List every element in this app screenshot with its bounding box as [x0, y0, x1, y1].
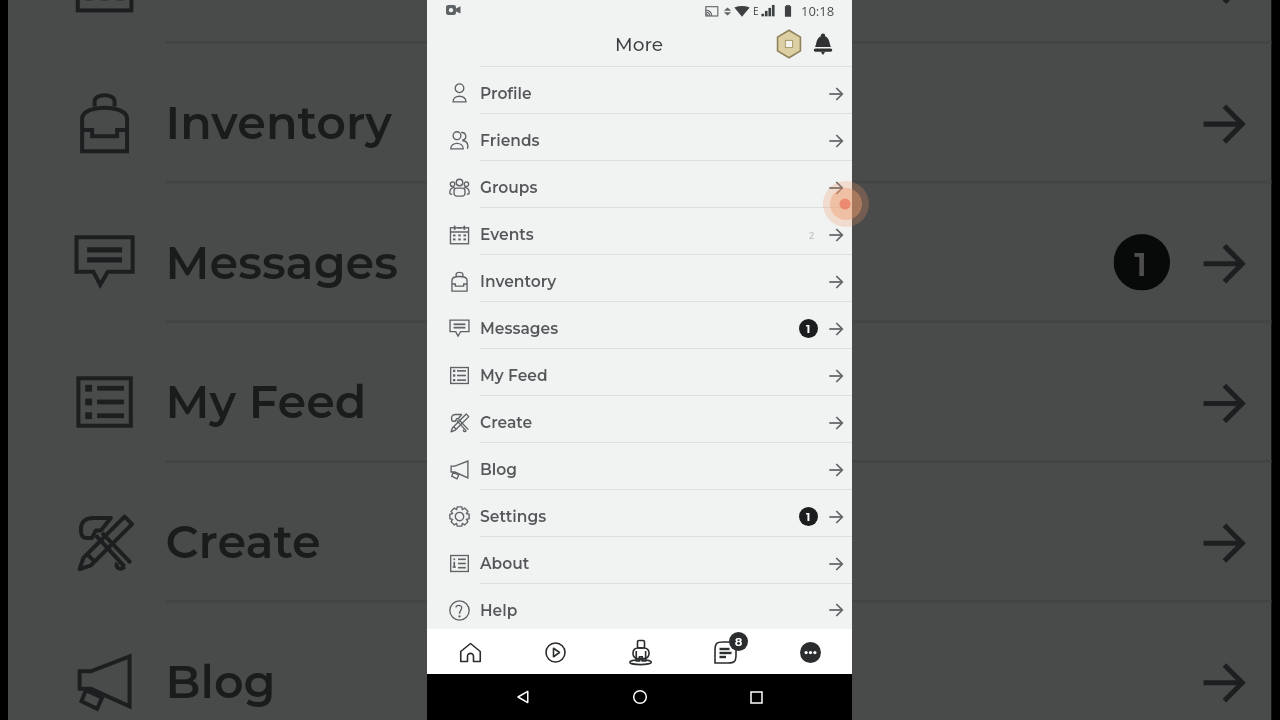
staticText: More [615, 33, 664, 56]
staticText: Create [480, 413, 533, 432]
staticText: Blog [165, 653, 278, 710]
staticText: Settings [480, 507, 547, 526]
staticText: Inventory [480, 272, 557, 291]
button[interactable]: Notifications [808, 29, 838, 59]
staticText: Create [165, 513, 323, 570]
button[interactable]: Messages [427, 302, 852, 348]
button[interactable]: Recents [741, 682, 771, 712]
button[interactable]: Settings [427, 490, 852, 536]
button[interactable]: Events [427, 208, 852, 254]
staticText: 2 [809, 229, 815, 241]
staticText: Blog [480, 460, 518, 479]
button[interactable]: Home [427, 629, 512, 674]
button[interactable]: Blog [427, 443, 852, 489]
button[interactable]: Create [8, 463, 1271, 600]
staticText: My Feed [480, 366, 548, 385]
button[interactable]: Home [625, 682, 655, 712]
staticText: 1 [806, 510, 811, 523]
staticText: My Feed [165, 374, 368, 430]
staticText: 1 [806, 322, 811, 335]
staticText: Help [480, 601, 518, 620]
button[interactable]: My Feed [8, 323, 1271, 460]
button[interactable]: My Feed [427, 349, 852, 395]
button[interactable]: Groups [427, 161, 852, 207]
staticText: Messages [165, 234, 400, 291]
button[interactable]: Help [427, 584, 852, 629]
staticText: Groups [480, 178, 538, 197]
button[interactable]: Avatar [597, 629, 682, 674]
button[interactable]: Inventory [427, 255, 852, 301]
staticText: 1 [1134, 243, 1149, 282]
staticText: Messages [480, 319, 559, 338]
button[interactable]: Chat [682, 629, 767, 674]
button[interactable]: About [427, 537, 852, 583]
staticText: Profile [480, 84, 532, 103]
button[interactable]: Create [427, 396, 852, 442]
button[interactable]: Back [508, 682, 538, 712]
staticText: 8 [735, 635, 743, 648]
button[interactable]: Inventory [8, 44, 1271, 181]
button[interactable]: More [767, 629, 852, 674]
button[interactable]: Friends [427, 114, 852, 160]
staticText: Inventory [165, 94, 394, 151]
staticText: 10:18 [801, 2, 835, 20]
staticText: About [480, 554, 530, 573]
staticText: E [753, 4, 759, 18]
button[interactable]: Messages [8, 183, 1271, 320]
button[interactable]: Blog [8, 603, 1271, 720]
staticText: Events [480, 225, 534, 244]
button[interactable]: Profile [427, 67, 852, 113]
staticText: Friends [480, 131, 540, 150]
button[interactable]: Robux balance [774, 29, 804, 59]
button[interactable]: Play [512, 629, 597, 674]
button[interactable]: Events [8, 0, 1271, 41]
